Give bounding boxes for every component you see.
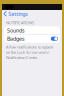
button[interactable]: Settings (4, 10, 28, 18)
staticText: NOTIFICATIONS (6, 20, 34, 25)
staticText: Settings (8, 10, 28, 18)
button[interactable]: Badges (4, 35, 60, 43)
button[interactable]: Sounds (4, 26, 60, 34)
staticText: Allow notifications to appear on the Loc… (6, 44, 54, 60)
staticText: Sounds (7, 27, 25, 34)
staticText: Badges (7, 35, 25, 42)
